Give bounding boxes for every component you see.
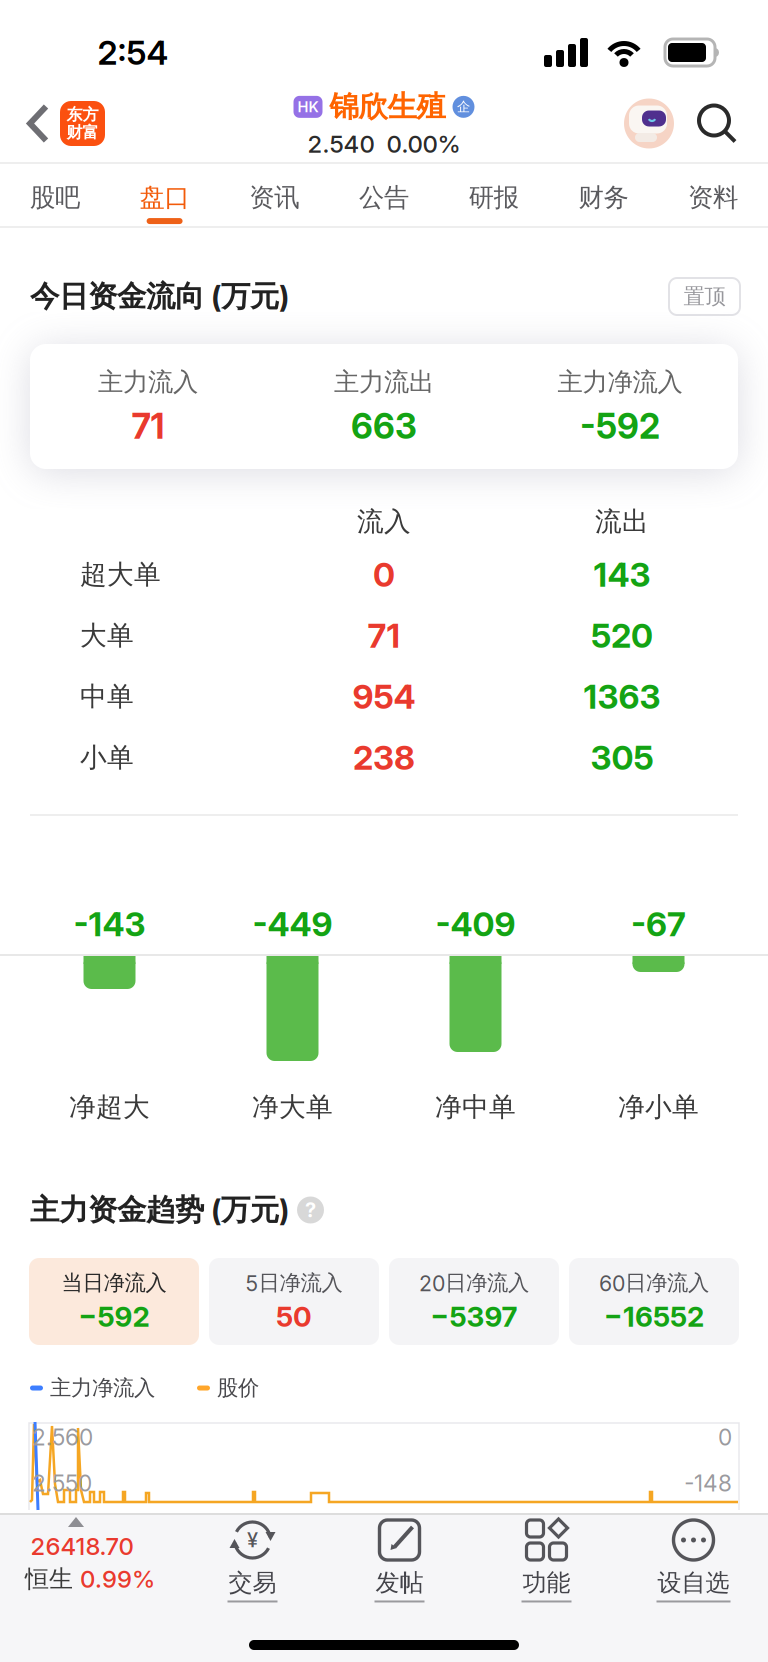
staticText: 财富 <box>66 122 98 142</box>
staticText: 主力净流入 <box>557 366 682 398</box>
button[interactable]: 研报 <box>439 164 548 226</box>
staticText: 流出 <box>595 505 649 538</box>
staticText: −5397 <box>430 1300 517 1333</box>
staticText: 功能 <box>522 1568 570 1597</box>
staticText: 当日净流入 <box>61 1270 166 1296</box>
staticText: -148 <box>684 1470 732 1497</box>
button[interactable]: 置顶 <box>669 278 740 315</box>
staticText: 520 <box>591 616 653 655</box>
staticText: 锦欣生殖 <box>329 89 445 125</box>
staticText: 净小单 <box>618 1091 699 1123</box>
staticText: -67 <box>631 904 686 944</box>
button[interactable]: 东方财富 <box>60 101 105 146</box>
staticText: 置顶 <box>683 283 725 310</box>
staticText: 发帖 <box>375 1568 423 1597</box>
staticText: 主力流入 <box>98 366 198 398</box>
staticText: 主力净流入 <box>50 1375 155 1401</box>
staticText: 股吧 <box>30 182 80 213</box>
button[interactable]: 公告 <box>329 164 439 226</box>
staticText: −592 <box>78 1300 149 1333</box>
button[interactable]: 60日净流入 <box>569 1258 739 1345</box>
staticText: 2.560 <box>32 1424 93 1451</box>
staticText: 0 <box>718 1424 732 1451</box>
staticText: 143 <box>593 555 650 594</box>
staticText: 流入 <box>357 505 411 538</box>
staticText: 305 <box>590 738 653 777</box>
staticText: 财务 <box>578 182 628 213</box>
staticText: −16552 <box>604 1300 704 1333</box>
staticText: 交易 <box>228 1568 276 1597</box>
staticText: HK <box>297 98 318 115</box>
button[interactable]: 当日净流入 <box>29 1258 199 1345</box>
button[interactable]: 资料 <box>658 164 768 226</box>
staticText: 大单 <box>80 619 134 652</box>
button[interactable]: Back <box>26 104 50 142</box>
button[interactable]: 财务 <box>548 164 658 226</box>
staticText: 238 <box>353 738 415 777</box>
staticText: 71 <box>367 616 400 655</box>
staticText: -592 <box>580 406 660 446</box>
button[interactable]: Search <box>696 102 738 144</box>
button[interactable]: 盘口 <box>110 164 219 226</box>
staticText: 盘口 <box>140 182 190 213</box>
staticText: 中单 <box>80 680 134 713</box>
staticText: 资料 <box>688 182 738 213</box>
staticText: 净超大 <box>69 1091 150 1123</box>
staticText: ? <box>305 1198 316 1222</box>
staticText: 超大单 <box>80 558 161 591</box>
staticText: 研报 <box>469 182 519 213</box>
staticText: -449 <box>252 904 332 944</box>
staticText: 954 <box>352 677 415 716</box>
staticText: 今日资金流向 (万元) <box>30 278 289 314</box>
staticText: 资讯 <box>249 182 299 213</box>
staticText: -409 <box>435 904 515 944</box>
button[interactable]: 设自选 <box>620 1517 767 1602</box>
staticText: 净中单 <box>435 1091 516 1123</box>
button[interactable]: 发帖 <box>326 1517 473 1602</box>
staticText: 小单 <box>80 741 134 774</box>
staticText: 60日净流入 <box>599 1270 709 1296</box>
staticText: 2.540 0.00% <box>307 130 460 158</box>
staticText: 0.99% <box>80 1565 155 1593</box>
staticText: 恒生 <box>25 1564 73 1594</box>
staticText: 企 <box>457 99 470 115</box>
button[interactable]: 26418.70 <box>9 1517 179 1594</box>
button[interactable]: 功能 <box>473 1517 620 1602</box>
staticText: 5日净流入 <box>245 1270 342 1296</box>
staticText: 663 <box>351 406 417 446</box>
staticText: 1363 <box>583 677 660 716</box>
staticText: 净大单 <box>252 1091 333 1123</box>
staticText: ¥ <box>247 1528 258 1552</box>
button[interactable]: 股吧 <box>0 164 110 226</box>
staticText: 公告 <box>359 182 409 213</box>
staticText: 东方 <box>66 105 98 124</box>
button[interactable]: 20日净流入 <box>389 1258 559 1345</box>
staticText: 26418.70 <box>30 1532 133 1560</box>
button[interactable]: 说明 <box>297 1196 324 1223</box>
staticText: 股价 <box>217 1375 259 1401</box>
staticText: 2.550 <box>32 1470 92 1497</box>
staticText: 2:54 <box>97 33 168 72</box>
button[interactable]: ¥ <box>179 1517 326 1602</box>
button[interactable]: 资讯 <box>219 164 329 226</box>
staticText: 主力流出 <box>334 366 434 398</box>
button[interactable]: 智能助手 <box>624 98 674 148</box>
staticText: 主力资金趋势 (万元) <box>30 1192 289 1228</box>
staticText: 设自选 <box>657 1568 729 1597</box>
staticText: 50 <box>276 1300 312 1333</box>
staticText: 0 <box>373 555 395 594</box>
staticText: -143 <box>73 904 145 944</box>
staticText: 71 <box>131 406 164 446</box>
staticText: 20日净流入 <box>419 1270 529 1296</box>
button[interactable]: 5日净流入 <box>209 1258 379 1345</box>
